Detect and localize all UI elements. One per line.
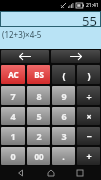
staticText: . [62,150,65,162]
staticText: + [86,150,92,162]
staticText: ÷ [86,90,92,102]
staticText: 3 [61,130,67,142]
button[interactable]: 00 [27,147,50,165]
button[interactable]: 0 [1,147,25,165]
staticText: BS [34,69,44,80]
staticText: 0 [10,150,16,162]
staticText: 55 [82,12,97,26]
button[interactable]: 2 [27,127,50,145]
staticText: (12+3)×4-5 [2,29,42,40]
button[interactable]: . [52,147,75,165]
button[interactable]: ( [52,65,75,84]
button[interactable]: Home [42,166,60,180]
staticText: 2 [36,130,42,142]
button[interactable]: Move cursor right [51,50,100,63]
button[interactable]: Back [12,166,30,180]
staticText: ( [62,69,66,81]
button[interactable]: ÷ [77,86,100,105]
button[interactable]: 1 [1,127,25,145]
button[interactable]: + [77,147,100,165]
button[interactable]: 7 [1,86,25,105]
button[interactable]: 3 [52,127,75,145]
button[interactable]: 8 [27,86,50,105]
staticText: 00 [34,151,44,162]
button[interactable]: × [77,107,100,125]
button[interactable]: Recent apps [71,166,89,180]
staticText: × [86,110,92,122]
staticText: 1 [10,130,16,142]
button[interactable]: AC [1,65,25,84]
staticText: 4 [10,110,16,122]
staticText: 5 [36,110,42,122]
button[interactable]: Move cursor left [1,50,49,63]
button[interactable]: 9 [52,86,75,105]
staticText: 9 [61,90,67,102]
staticText: AC [8,69,19,80]
staticText: 7 [10,90,16,102]
staticText: 21:41 [86,2,99,9]
button[interactable]: 4 [1,107,25,125]
button[interactable]: − [77,127,100,145]
staticText: − [86,130,92,142]
staticText: ) [87,69,91,81]
button[interactable]: 6 [52,107,75,125]
button[interactable]: 5 [27,107,50,125]
button[interactable]: ) [77,65,100,84]
button[interactable]: BS [27,65,50,84]
staticText: 8 [36,90,42,102]
staticText: 6 [61,110,67,122]
